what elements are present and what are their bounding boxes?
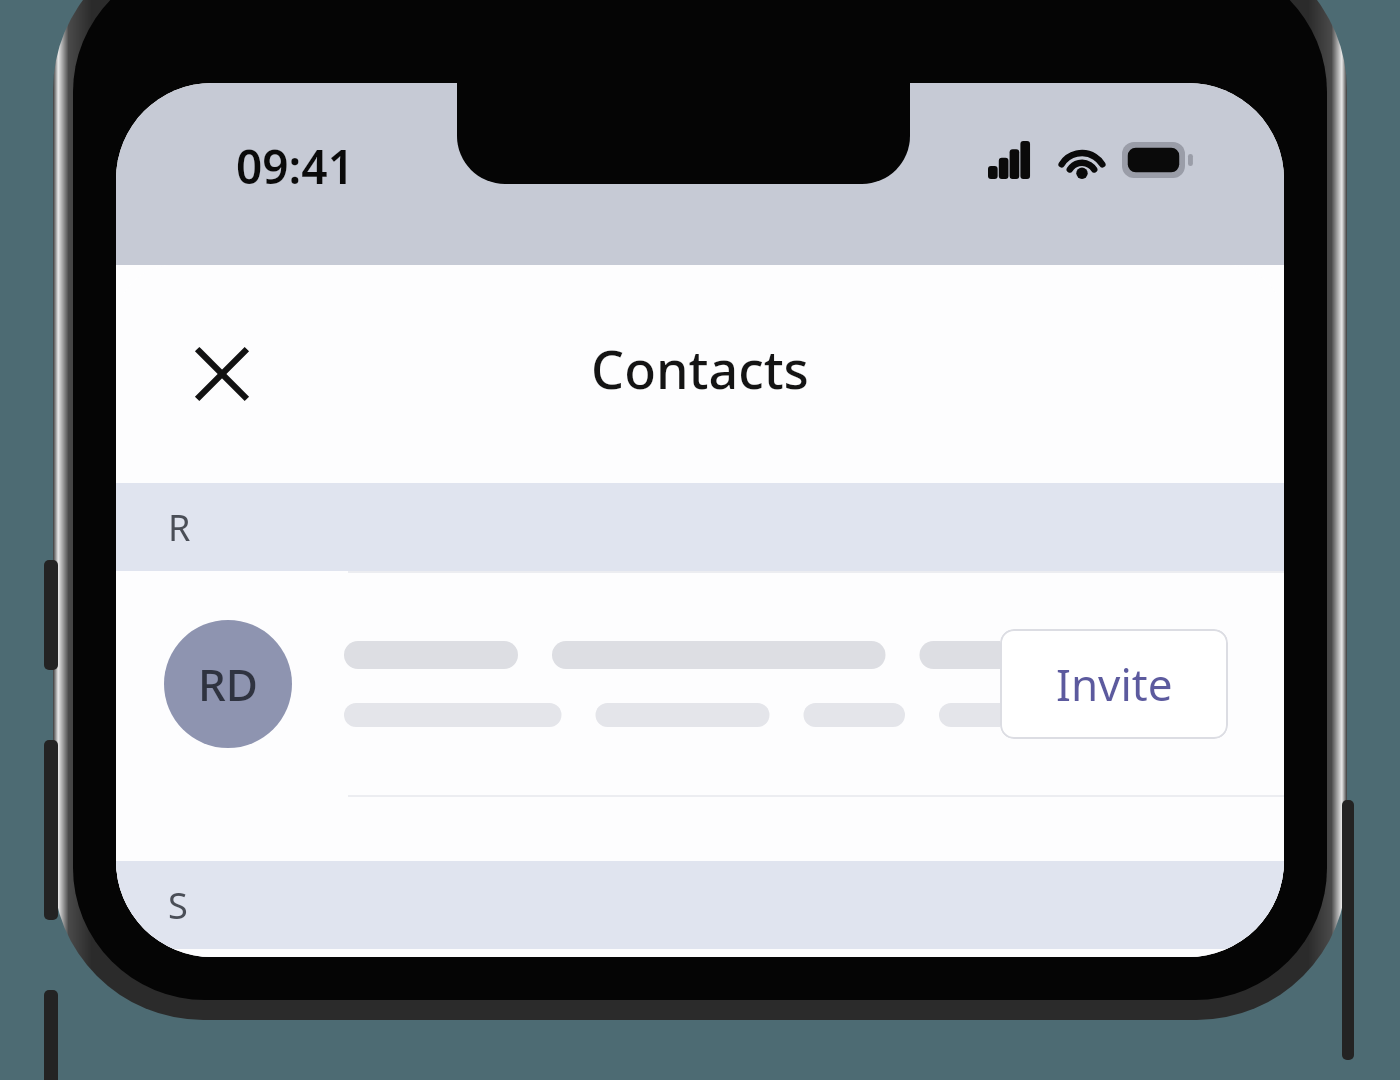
- button[interactable]: Close: [164, 316, 280, 432]
- button[interactable]: RD: [116, 573, 1284, 795]
- staticText: S: [168, 881, 188, 930]
- staticText: 09:41: [236, 135, 354, 198]
- staticText: RD: [198, 654, 258, 714]
- button[interactable]: Invite: [1000, 629, 1228, 739]
- staticText: Invite: [1056, 654, 1173, 714]
- staticText: R: [168, 503, 191, 552]
- staticText: Contacts: [591, 333, 809, 404]
